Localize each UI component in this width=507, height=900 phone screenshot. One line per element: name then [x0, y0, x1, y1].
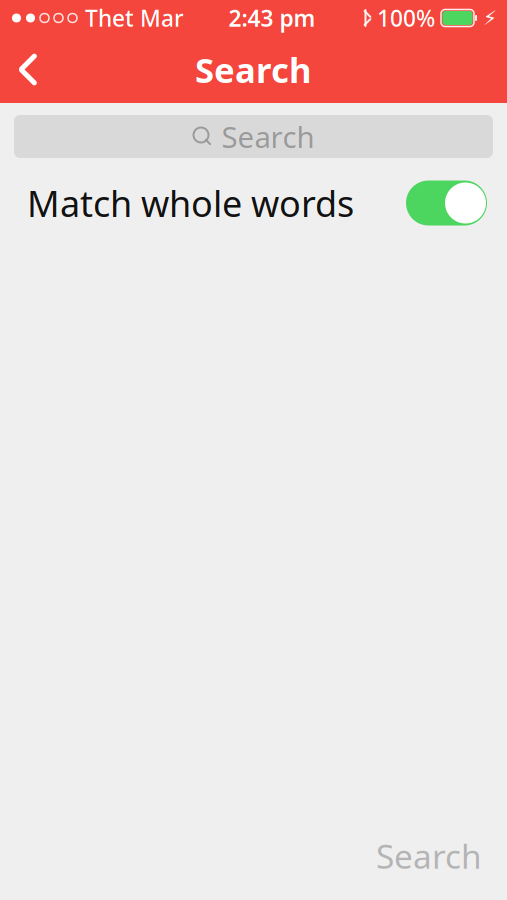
- staticText: 2:43 pm: [228, 3, 315, 33]
- button[interactable]: Back: [0, 36, 56, 103]
- staticText: ⚡︎: [483, 7, 497, 29]
- staticText: Search: [195, 46, 312, 92]
- staticText: Search: [376, 834, 482, 878]
- button[interactable]: Match whole words: [0, 172, 507, 234]
- button[interactable]: Search: [14, 115, 493, 158]
- staticText: Thet Mar: [85, 3, 184, 33]
- staticText: Search: [221, 117, 314, 156]
- staticText: Match whole words: [27, 179, 354, 227]
- staticText: 100%: [377, 3, 435, 33]
